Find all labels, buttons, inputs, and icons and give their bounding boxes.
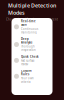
staticText: Quick Check <box>21 55 39 58</box>
staticText: Continuous monitoring <box>21 27 38 34</box>
staticText: Deep Analysis <box>21 37 32 44</box>
staticText: Your own criteria <box>21 76 34 84</box>
staticText: Custom Rules <box>21 69 32 76</box>
staticText: Real-time Scan <box>21 19 36 27</box>
staticText: Fast surface review <box>21 59 35 66</box>
staticText: Choose how AI analyses your content <box>6 18 58 21</box>
staticText: Thorough inspection <box>21 45 36 52</box>
staticText: Multiple Detection Modes <box>8 2 56 16</box>
